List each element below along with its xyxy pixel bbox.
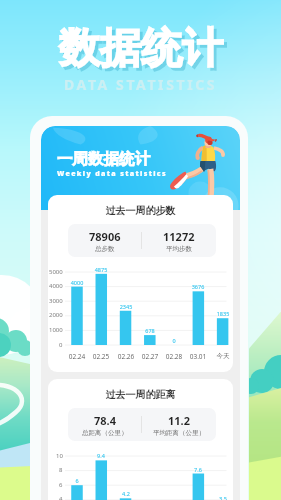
staticText: 0: [59, 341, 63, 349]
staticText: DATA STATISTICS: [64, 75, 218, 94]
staticText: 11272: [163, 229, 195, 244]
staticText: 过去一周的距离: [48, 388, 233, 401]
staticText: Weekly data statistics: [57, 169, 167, 179]
staticText: 4000: [49, 282, 63, 290]
staticText: 3.5: [209, 495, 233, 500]
staticText: 8: [59, 466, 63, 474]
staticText: 2345: [112, 303, 140, 310]
staticText: 3000: [49, 297, 63, 305]
staticText: 过去一周的步数: [48, 204, 233, 217]
staticText: 02.25: [87, 352, 115, 361]
staticText: 总步数: [95, 245, 115, 253]
staticText: 总距离（公里）: [82, 429, 128, 437]
staticText: 4: [59, 495, 63, 500]
staticText: 3676: [184, 283, 212, 290]
staticText: 4.2: [112, 490, 140, 497]
staticText: 11.2: [168, 413, 190, 428]
staticText: 78.4: [94, 413, 116, 428]
staticText: 4875: [87, 266, 115, 273]
staticText: 02.27: [136, 352, 164, 361]
staticText: 1000: [49, 326, 63, 334]
staticText: 02.24: [63, 352, 91, 361]
staticText: 6: [59, 481, 63, 489]
staticText: 数据统计: [59, 23, 223, 75]
staticText: 0: [160, 337, 188, 344]
staticText: 9.4: [87, 452, 115, 459]
staticText: 今天: [209, 352, 233, 360]
staticText: 1835: [209, 310, 233, 317]
staticText: 平均距离（公里）: [153, 429, 205, 437]
staticText: 2000: [49, 311, 63, 319]
staticText: 6: [63, 477, 91, 484]
staticText: 4000: [63, 279, 91, 286]
staticText: 03.01: [184, 352, 212, 361]
staticText: 02.28: [160, 352, 188, 361]
staticText: 78906: [89, 229, 121, 244]
staticText: 7.6: [184, 466, 212, 473]
staticText: 678: [136, 327, 164, 334]
staticText: 10: [56, 452, 63, 460]
staticText: 数据统计: [62, 26, 226, 78]
staticText: 平均步数: [166, 245, 192, 253]
staticText: 一周数据统计: [57, 149, 150, 169]
staticText: 02.26: [112, 352, 140, 361]
staticText: 5000: [49, 268, 63, 276]
